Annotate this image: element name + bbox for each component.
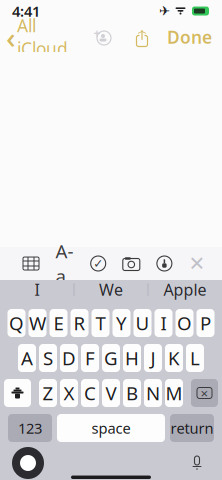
button[interactable]: Table bbox=[22, 249, 40, 278]
button[interactable]: E bbox=[49, 309, 67, 337]
staticText: B bbox=[126, 381, 138, 405]
button[interactable]: Dictate bbox=[180, 448, 214, 478]
staticText: × bbox=[200, 384, 208, 402]
staticText: ✓ bbox=[93, 257, 103, 270]
button[interactable]: Collaborate bbox=[87, 23, 117, 51]
staticText: return bbox=[170, 418, 213, 438]
staticText: N bbox=[146, 381, 160, 405]
staticText: F bbox=[85, 346, 95, 370]
staticText: + bbox=[93, 25, 100, 41]
button[interactable]: B bbox=[123, 379, 141, 407]
button[interactable]: P bbox=[196, 309, 214, 337]
staticText: M bbox=[165, 381, 182, 405]
button[interactable]: Markup bbox=[155, 248, 173, 278]
button[interactable]: K bbox=[165, 344, 183, 372]
staticText: W bbox=[29, 311, 46, 335]
staticText: H bbox=[125, 346, 139, 370]
button[interactable]: Done bbox=[167, 20, 222, 53]
button[interactable]: W bbox=[28, 309, 46, 337]
button[interactable]: Y bbox=[112, 309, 130, 337]
staticText: S bbox=[43, 346, 53, 370]
staticText: Q bbox=[9, 311, 24, 335]
staticText: P bbox=[200, 311, 211, 335]
button[interactable]: U bbox=[133, 309, 151, 337]
staticText: ◗ bbox=[180, 9, 181, 12]
button[interactable]: Close keyboard bbox=[188, 248, 206, 278]
button[interactable]: Share bbox=[129, 24, 155, 50]
staticText: 4:41 bbox=[12, 1, 40, 21]
staticText: We bbox=[99, 279, 123, 300]
button[interactable]: ‹ bbox=[0, 9, 68, 65]
button[interactable]: G bbox=[102, 344, 120, 372]
button[interactable]: Camera bbox=[122, 248, 141, 278]
button[interactable]: H bbox=[123, 344, 141, 372]
button[interactable]: N bbox=[144, 379, 162, 407]
button[interactable]: Shift bbox=[4, 379, 31, 407]
button[interactable]: R bbox=[70, 309, 88, 337]
button[interactable]: C bbox=[81, 379, 99, 407]
button[interactable]: T bbox=[91, 309, 109, 337]
staticText: V bbox=[105, 381, 116, 405]
button[interactable]: L bbox=[186, 344, 204, 372]
button[interactable]: X bbox=[60, 379, 78, 407]
button[interactable]: 123 bbox=[8, 414, 52, 442]
button[interactable]: I bbox=[0, 277, 73, 302]
staticText: 123 bbox=[18, 418, 42, 438]
staticText: ︿ bbox=[137, 25, 146, 37]
button[interactable]: S bbox=[39, 344, 57, 372]
button[interactable]: V bbox=[102, 379, 120, 407]
staticText: Y bbox=[116, 311, 127, 335]
button[interactable]: Apple bbox=[148, 277, 221, 302]
staticText: U bbox=[135, 311, 149, 335]
staticText: C bbox=[84, 381, 96, 405]
button[interactable]: Z bbox=[39, 379, 57, 407]
button[interactable]: We bbox=[74, 277, 147, 302]
staticText: A bbox=[21, 346, 33, 370]
staticText: R bbox=[73, 311, 85, 335]
staticText: D bbox=[62, 346, 76, 370]
button[interactable]: D bbox=[60, 344, 78, 372]
staticText: All iCloud bbox=[17, 14, 68, 60]
staticText: space bbox=[91, 418, 130, 438]
staticText: O bbox=[177, 311, 192, 335]
button[interactable]: Delete bbox=[191, 379, 218, 407]
button[interactable]: F bbox=[81, 344, 99, 372]
staticText: I bbox=[34, 279, 39, 300]
staticText: Aa bbox=[56, 239, 74, 288]
button[interactable]: A bbox=[18, 344, 36, 372]
button[interactable]: I bbox=[154, 309, 172, 337]
button[interactable]: Emoji bbox=[8, 445, 48, 480]
button[interactable]: return bbox=[170, 414, 214, 442]
staticText: G bbox=[104, 346, 118, 370]
staticText: ✕ bbox=[188, 252, 205, 275]
button[interactable]: space bbox=[57, 414, 165, 442]
button[interactable]: Checklist bbox=[89, 248, 107, 278]
staticText: X bbox=[63, 381, 74, 405]
staticText: K bbox=[168, 346, 180, 370]
staticText: E bbox=[53, 311, 63, 335]
staticText: Z bbox=[42, 381, 53, 405]
staticText: Apple bbox=[163, 279, 206, 300]
staticText: J bbox=[150, 346, 155, 370]
staticText: Done bbox=[167, 25, 212, 48]
staticText: I bbox=[160, 311, 166, 335]
staticText: ‹ bbox=[6, 17, 16, 56]
button[interactable]: J bbox=[144, 344, 162, 372]
staticText: ✈ bbox=[159, 3, 170, 18]
button[interactable]: Format bbox=[55, 248, 75, 278]
button[interactable]: M bbox=[165, 379, 183, 407]
button[interactable]: O bbox=[175, 309, 193, 337]
staticText: T bbox=[95, 311, 105, 335]
button[interactable]: Q bbox=[7, 309, 25, 337]
staticText: L bbox=[190, 346, 200, 370]
